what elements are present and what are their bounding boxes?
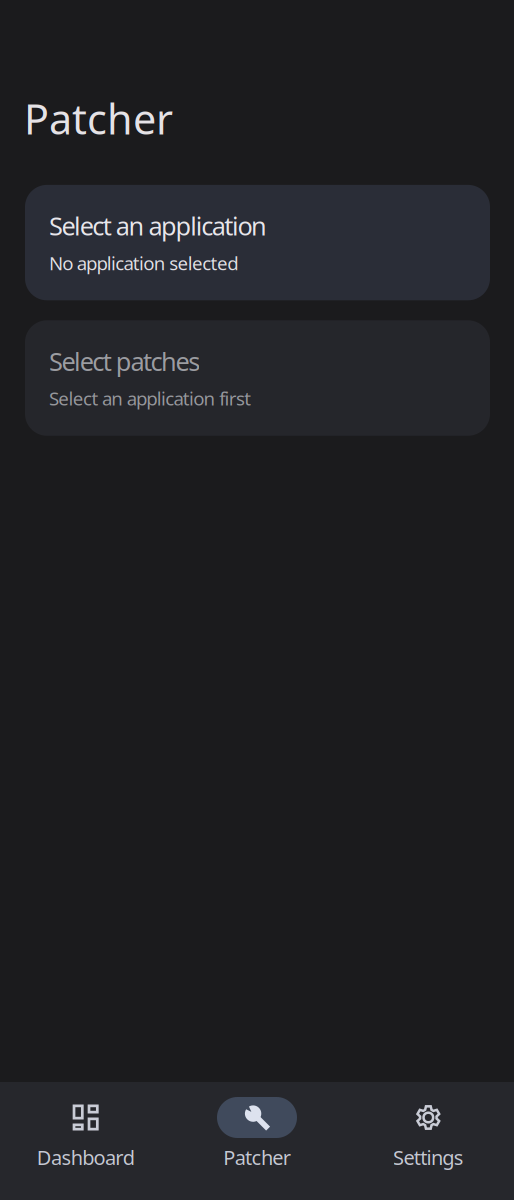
staticText: Select an application	[49, 209, 267, 242]
button[interactable]: Dashboard	[0, 1097, 171, 1171]
staticText: Patcher	[24, 91, 173, 146]
button[interactable]: Select an application	[25, 185, 490, 300]
staticText: No application selected	[49, 250, 238, 275]
staticText: Patcher	[223, 1144, 291, 1171]
staticText: Dashboard	[37, 1144, 135, 1171]
button[interactable]: Select patches	[25, 320, 490, 436]
staticText: Select an application first	[49, 386, 251, 411]
staticText: Select patches	[49, 344, 200, 378]
staticText: Settings	[393, 1144, 464, 1171]
button[interactable]: Patcher	[171, 1097, 343, 1171]
button[interactable]: Settings	[343, 1097, 514, 1171]
